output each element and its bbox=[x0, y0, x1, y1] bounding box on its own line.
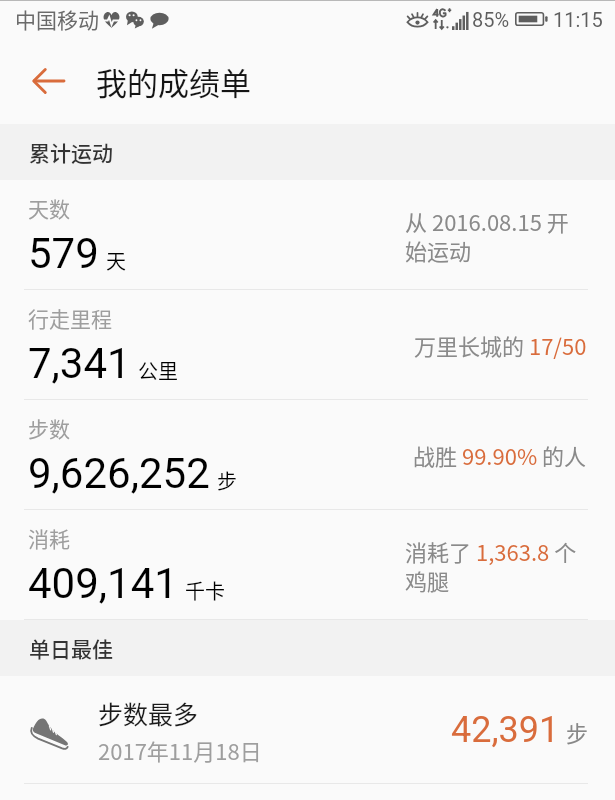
button[interactable]: 行走里程 bbox=[0, 290, 615, 400]
staticText: 行走里程 bbox=[28, 303, 112, 333]
staticText: 消耗了 1,363.8 个鸡腿 bbox=[405, 535, 587, 596]
staticText: 步数最多 bbox=[98, 695, 199, 731]
staticText: 85% bbox=[472, 8, 510, 31]
staticText: 579 bbox=[28, 229, 99, 278]
staticText: 天数 bbox=[28, 193, 70, 223]
staticText: 步数 bbox=[28, 413, 70, 443]
button[interactable]: 步数最多 bbox=[0, 676, 615, 784]
button[interactable]: 步数 bbox=[0, 400, 615, 510]
staticText: 千卡 bbox=[185, 576, 225, 605]
staticText: 7,341 bbox=[28, 339, 131, 388]
staticText: 消耗 bbox=[28, 523, 70, 553]
staticText: 累计运动 bbox=[29, 137, 113, 167]
staticText: 步 bbox=[566, 716, 589, 748]
staticText: 步 bbox=[217, 466, 237, 495]
staticText: 天 bbox=[106, 246, 126, 275]
staticText: 11:15 bbox=[553, 8, 603, 31]
staticText: 42,391 bbox=[451, 709, 560, 751]
button[interactable]: Back bbox=[8, 38, 88, 124]
staticText: 从 2016.08.15 开始运动 bbox=[405, 205, 587, 266]
button[interactable]: 消耗 bbox=[0, 510, 615, 620]
staticText: 中国移动 bbox=[15, 4, 99, 34]
button[interactable]: 天数 bbox=[0, 180, 615, 290]
staticText: 我的成绩单 bbox=[96, 59, 251, 104]
staticText: 409,141 bbox=[28, 559, 178, 608]
staticText: 公里 bbox=[138, 356, 178, 385]
staticText: 万里长城的 17/50 bbox=[414, 329, 587, 361]
staticText: 战胜 99.90% 的人 bbox=[413, 439, 587, 471]
staticText: 2017年11月18日 bbox=[98, 734, 262, 766]
staticText: 9,626,252 bbox=[28, 449, 210, 498]
staticText: 单日最佳 bbox=[29, 633, 113, 663]
